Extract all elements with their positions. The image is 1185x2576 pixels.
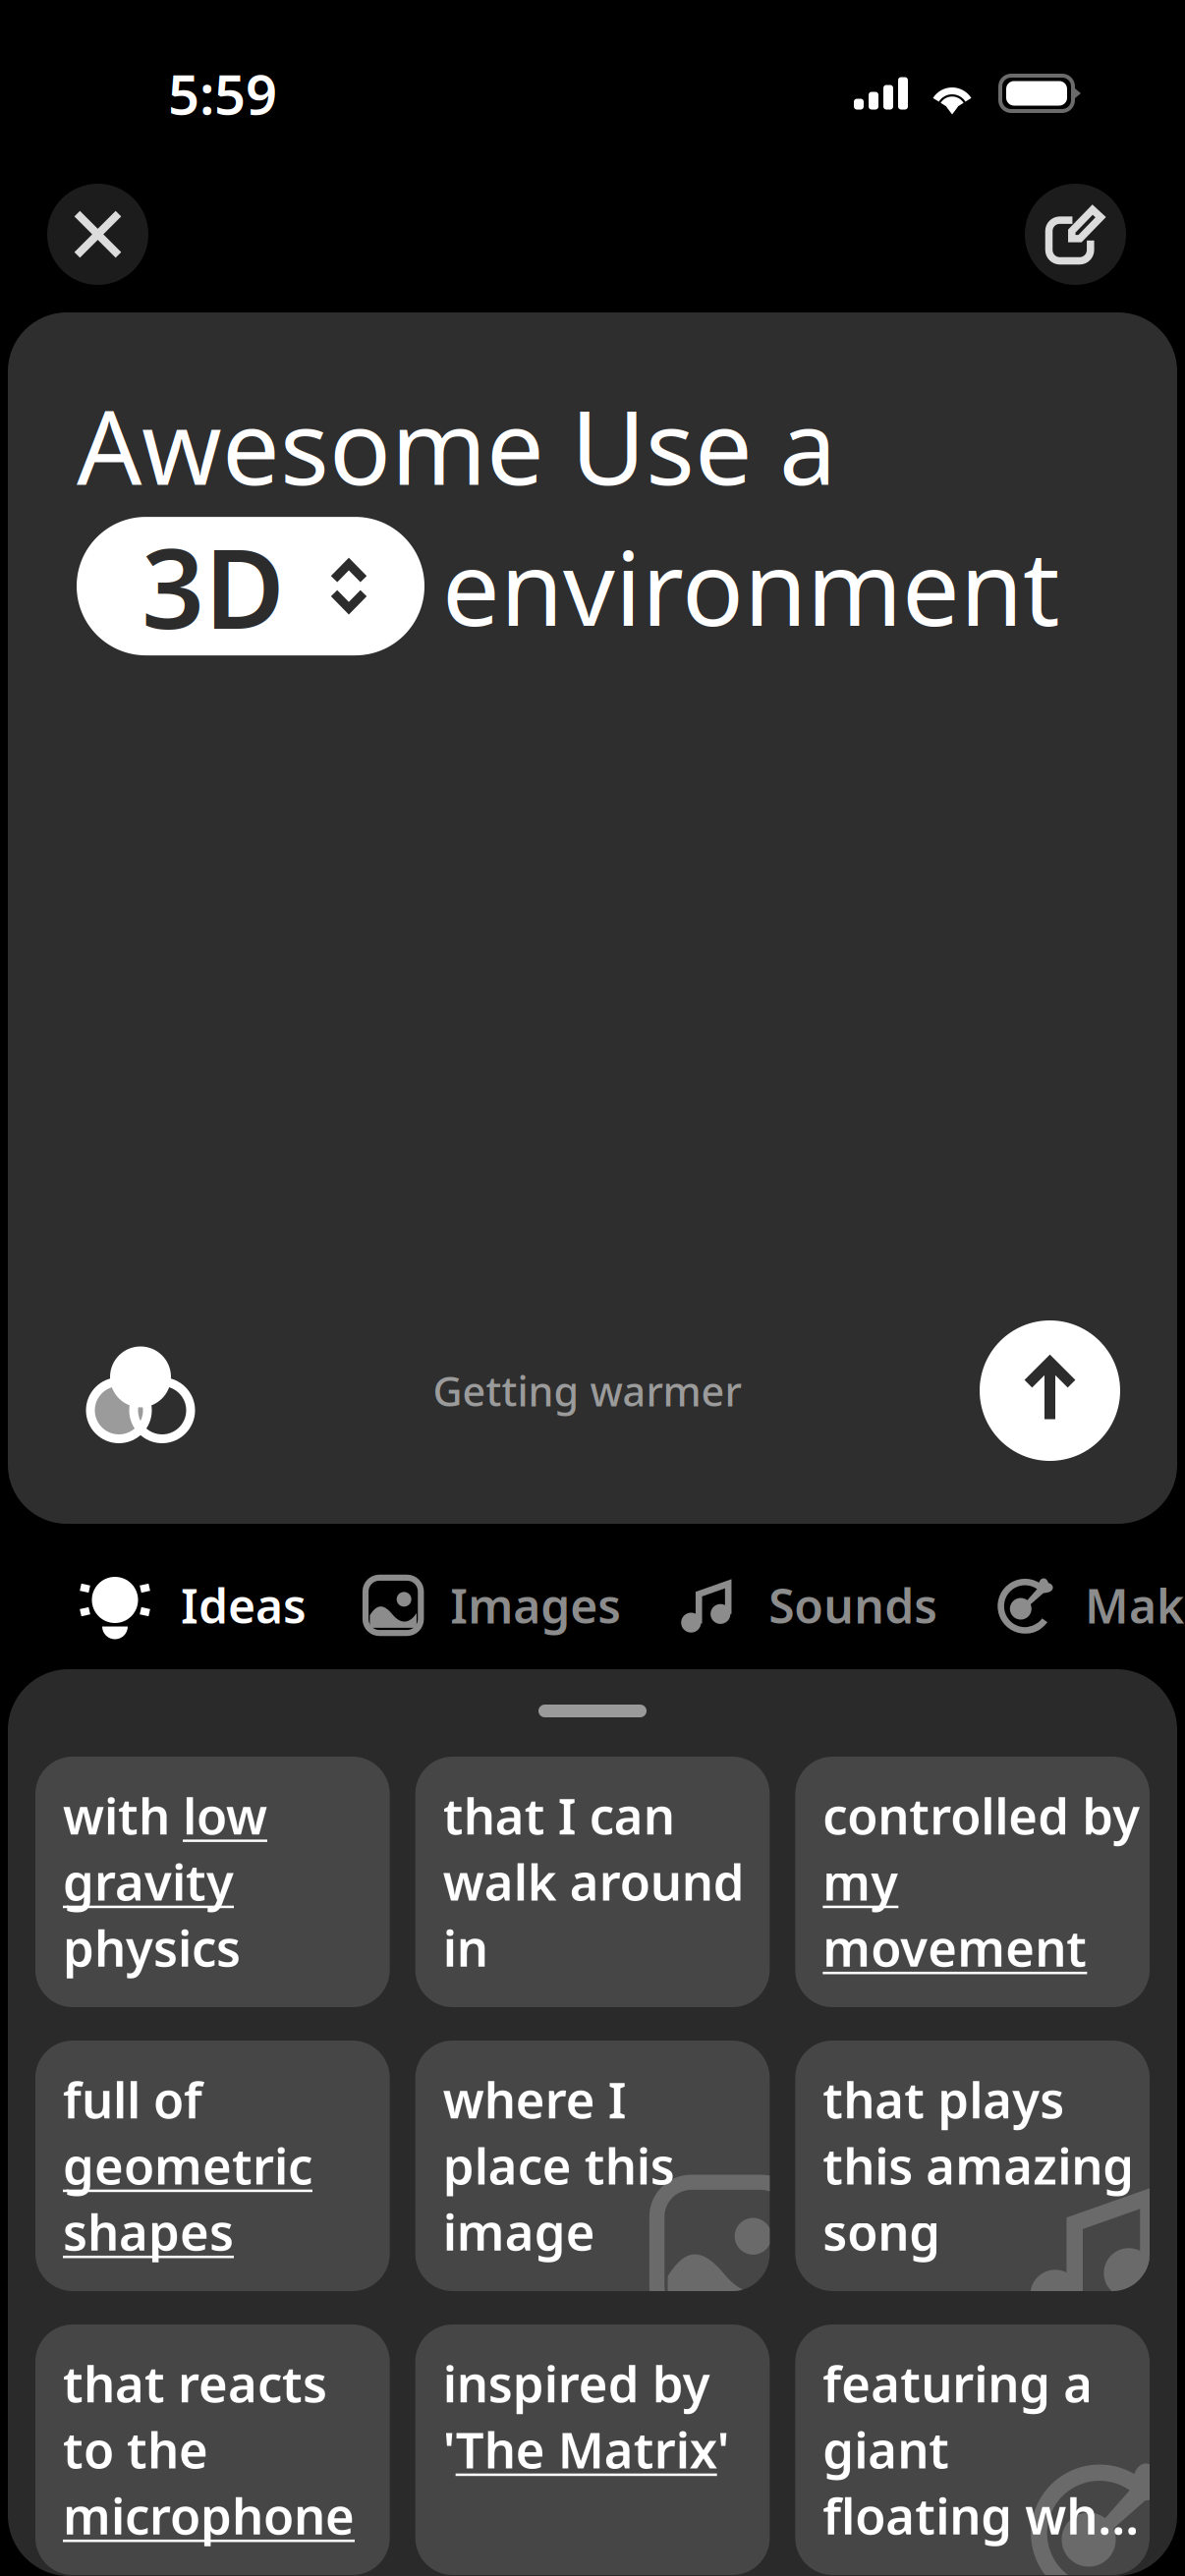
button[interactable]: with low gravity physics — [35, 1757, 390, 2007]
staticText: that I can walk around in — [443, 1782, 745, 1981]
staticText: Awesome Use a — [77, 377, 836, 513]
staticText: with low gravity physics — [63, 1782, 267, 1981]
staticText: Getting warmer — [433, 1364, 741, 1418]
button[interactable]: Send — [980, 1320, 1120, 1461]
button[interactable]: that plays this amazing song — [795, 2041, 1150, 2291]
staticText: inspired by 'The Matrix' — [443, 2350, 730, 2482]
staticText: where I place this image — [443, 2066, 675, 2264]
button[interactable]: controlled by my movement — [795, 1757, 1150, 2007]
button[interactable]: Make — [997, 1574, 1185, 1637]
staticText: that plays this amazing song — [823, 2066, 1134, 2264]
staticText: controlled by my movement — [823, 1782, 1140, 1981]
button[interactable]: Images — [366, 1574, 621, 1637]
button[interactable]: Ideas — [79, 1568, 307, 1642]
button[interactable]: Sounds — [680, 1574, 937, 1637]
staticText: 5:59 — [168, 57, 277, 130]
button[interactable]: that I can walk around in — [415, 1757, 770, 2007]
staticText: Make — [1085, 1574, 1185, 1637]
button[interactable]: full of geometric shapes — [35, 2041, 390, 2291]
button[interactable]: 3D — [77, 517, 424, 655]
staticText: Sounds — [769, 1574, 938, 1637]
staticText: 3D — [141, 513, 285, 659]
button[interactable]: Compose — [1025, 184, 1126, 285]
staticText: Images — [450, 1574, 621, 1637]
button[interactable]: Style — [86, 1337, 195, 1445]
button[interactable]: that reacts to the microphone — [35, 2324, 390, 2575]
button[interactable]: featuring a giant floating wh… — [795, 2324, 1150, 2575]
staticText: full of geometric shapes — [63, 2066, 312, 2264]
staticText: Ideas — [181, 1574, 307, 1637]
button[interactable]: inspired by 'The Matrix' — [415, 2324, 770, 2575]
staticText: featuring a giant floating wh… — [823, 2350, 1139, 2548]
staticText: that reacts to the microphone — [63, 2350, 355, 2548]
staticText: environment — [442, 518, 1060, 654]
button[interactable]: Close — [47, 184, 148, 285]
button[interactable]: where I place this image — [415, 2041, 770, 2291]
